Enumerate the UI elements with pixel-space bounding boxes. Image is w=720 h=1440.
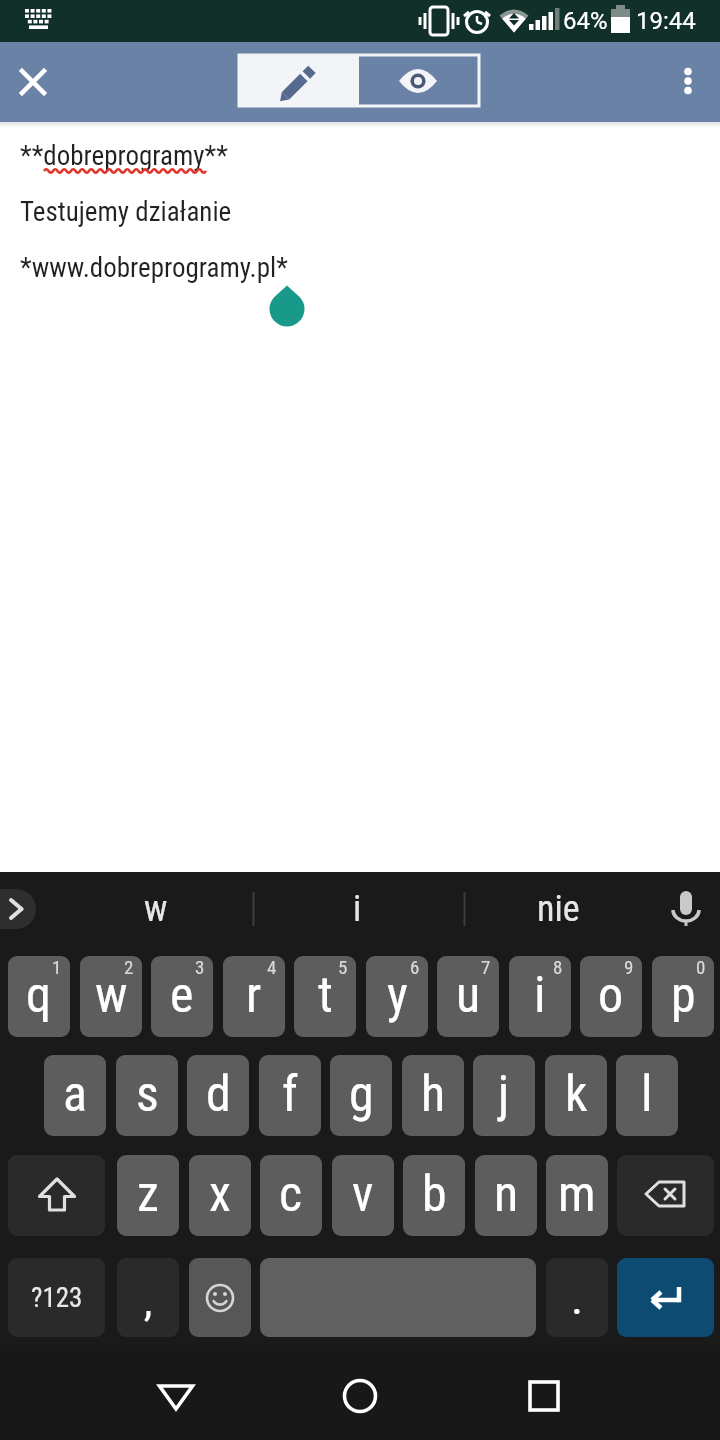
button[interactable]: e: [151, 956, 213, 1037]
staticText: i: [353, 888, 362, 930]
staticText: .: [571, 1271, 584, 1325]
staticText: 3: [195, 956, 205, 978]
button[interactable]: l: [616, 1055, 678, 1136]
staticText: o: [598, 966, 624, 1025]
staticText: 7: [481, 956, 491, 978]
button[interactable]: [8, 1155, 105, 1236]
staticText: 6: [410, 956, 420, 978]
button[interactable]: x: [189, 1155, 251, 1236]
staticText: b: [422, 1165, 447, 1224]
button[interactable]: f: [259, 1055, 321, 1136]
button[interactable]: o: [580, 956, 642, 1037]
button[interactable]: [617, 1155, 714, 1236]
button[interactable]: [10, 59, 56, 105]
staticText: nie: [537, 888, 580, 930]
staticText: g: [349, 1065, 374, 1124]
button[interactable]: .: [546, 1258, 608, 1337]
button[interactable]: s: [116, 1055, 178, 1136]
button[interactable]: [664, 56, 712, 104]
staticText: 2: [124, 956, 134, 978]
button[interactable]: v: [332, 1155, 394, 1236]
button[interactable]: w: [80, 956, 142, 1037]
staticText: Testujemy działanie: [20, 196, 232, 228]
staticText: f: [282, 1065, 298, 1124]
staticText: 4: [267, 956, 277, 978]
button[interactable]: k: [545, 1055, 607, 1136]
button[interactable]: ,: [117, 1258, 179, 1337]
staticText: ,: [144, 1277, 153, 1326]
staticText: 0: [696, 956, 706, 978]
button[interactable]: z: [117, 1155, 179, 1236]
button[interactable]: [146, 1366, 206, 1426]
staticText: 5: [338, 956, 348, 978]
staticText: e: [170, 966, 194, 1025]
staticText: 64%: [563, 7, 608, 35]
button[interactable]: [239, 55, 357, 106]
button[interactable]: u: [437, 956, 499, 1037]
button[interactable]: g: [330, 1055, 392, 1136]
staticText: r: [246, 966, 262, 1025]
staticText: p: [671, 966, 696, 1025]
button[interactable]: [260, 1258, 536, 1337]
staticText: y: [387, 966, 408, 1025]
button[interactable]: q: [8, 956, 70, 1037]
button[interactable]: p: [652, 956, 714, 1037]
staticText: k: [565, 1065, 588, 1124]
button[interactable]: i: [287, 882, 427, 936]
button[interactable]: n: [475, 1155, 537, 1236]
staticText: l: [641, 1065, 653, 1124]
staticText: *www.dobreprogramy.pl*: [20, 252, 288, 284]
button[interactable]: ?123: [8, 1258, 105, 1337]
button[interactable]: r: [223, 956, 285, 1037]
button[interactable]: d: [187, 1055, 249, 1136]
staticText: **dobreprogramy**: [20, 140, 228, 172]
button[interactable]: c: [260, 1155, 322, 1236]
staticText: z: [137, 1165, 159, 1224]
button[interactable]: j: [473, 1055, 535, 1136]
button[interactable]: h: [402, 1055, 464, 1136]
button[interactable]: nie: [488, 882, 628, 936]
button[interactable]: [514, 1366, 574, 1426]
staticText: v: [352, 1165, 374, 1224]
staticText: t: [318, 966, 333, 1025]
button[interactable]: [617, 1258, 714, 1337]
button[interactable]: t: [294, 956, 356, 1037]
staticText: 8: [553, 956, 563, 978]
staticText: i: [534, 966, 546, 1025]
button[interactable]: y: [366, 956, 428, 1037]
staticText: m: [558, 1165, 596, 1224]
staticText: u: [456, 966, 481, 1025]
staticText: 9: [624, 956, 634, 978]
button[interactable]: m: [546, 1155, 608, 1236]
staticText: a: [63, 1065, 87, 1124]
staticText: w: [95, 966, 128, 1025]
staticText: h: [421, 1065, 446, 1124]
button[interactable]: i: [509, 956, 571, 1037]
staticText: d: [206, 1065, 231, 1124]
staticText: c: [279, 1165, 303, 1224]
staticText: n: [494, 1165, 519, 1224]
staticText: 1: [52, 956, 62, 978]
staticText: x: [209, 1165, 231, 1224]
button[interactable]: [330, 1366, 390, 1426]
staticText: j: [498, 1065, 510, 1124]
staticText: ?123: [31, 1282, 83, 1314]
button[interactable]: [357, 55, 479, 106]
staticText: s: [136, 1065, 159, 1124]
button[interactable]: b: [403, 1155, 465, 1236]
button[interactable]: w: [86, 882, 226, 936]
button[interactable]: a: [44, 1055, 106, 1136]
staticText: 19:44: [636, 7, 696, 35]
button[interactable]: [189, 1258, 251, 1337]
staticText: q: [26, 966, 52, 1025]
staticText: w: [144, 888, 168, 930]
